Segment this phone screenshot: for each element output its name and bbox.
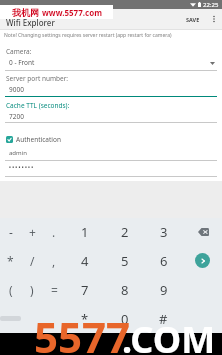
button[interactable]: 8 — [105, 275, 144, 304]
button[interactable]: 6 — [144, 246, 183, 275]
button[interactable]: 0 — [105, 304, 144, 333]
staticText: SAVE — [186, 16, 200, 23]
button[interactable]: * — [65, 304, 105, 333]
button[interactable]: 3 — [144, 218, 183, 246]
staticText: 9 — [160, 281, 168, 299]
staticText: * — [7, 253, 14, 269]
button[interactable]: Enter — [183, 246, 222, 275]
button[interactable]: 5 — [105, 246, 144, 275]
button[interactable]: 1 — [65, 218, 105, 246]
staticText: ( — [9, 282, 13, 298]
staticText: .COM — [122, 315, 216, 355]
button[interactable]: , — [43, 246, 65, 275]
staticText: 我机网 — [12, 7, 39, 18]
button[interactable]: 7 — [65, 275, 105, 304]
button[interactable] — [183, 304, 222, 333]
button[interactable]: ( — [0, 275, 21, 304]
button[interactable] — [43, 304, 65, 333]
button[interactable]: . — [43, 218, 65, 246]
staticText: 2 — [121, 223, 129, 241]
staticText: Cache TTL (seconds): — [6, 101, 70, 110]
button[interactable]: - — [0, 218, 21, 246]
staticText: Authentication — [16, 135, 61, 144]
button[interactable] — [0, 304, 21, 333]
staticText: * — [81, 310, 89, 328]
button[interactable]: Enter — [195, 253, 210, 268]
staticText: + — [29, 224, 36, 240]
button[interactable]: 4 — [65, 246, 105, 275]
staticText: . — [52, 224, 56, 240]
staticText: 22:25 — [203, 1, 219, 9]
staticText: 5577 — [34, 308, 131, 355]
staticText: ) — [30, 282, 34, 298]
button[interactable]: = — [43, 275, 65, 304]
staticText: 8 — [121, 281, 129, 299]
button[interactable]: * — [0, 246, 21, 275]
staticText: 1 — [81, 223, 89, 241]
staticText: Note! Changing settings requires server … — [4, 32, 172, 39]
button[interactable]: + — [21, 218, 43, 246]
staticText: 5 — [121, 252, 129, 270]
button[interactable]: 9 — [144, 275, 183, 304]
staticText: Wifi Explorer — [6, 17, 55, 28]
staticText: 6 — [160, 252, 168, 270]
button[interactable]: Backspace — [183, 218, 222, 246]
staticText: • • • • • • • • — [9, 164, 34, 171]
staticText: / — [30, 253, 35, 269]
staticText: , — [52, 253, 56, 269]
button[interactable]: More options — [206, 11, 222, 27]
staticText: # — [159, 310, 168, 328]
button[interactable] — [21, 304, 43, 333]
button[interactable]: 2 — [105, 218, 144, 246]
staticText: admin — [9, 149, 27, 157]
button[interactable]: Authentication — [6, 135, 61, 144]
staticText: www.5577.com — [42, 7, 102, 18]
staticText: Server port number: — [6, 74, 69, 83]
staticText: 0 - Front — [9, 58, 35, 67]
staticText: Camera: — [6, 47, 32, 56]
button[interactable]: Backspace — [196, 227, 210, 237]
button[interactable]: ) — [21, 275, 43, 304]
staticText: - — [9, 224, 13, 240]
staticText: 7200 — [9, 112, 24, 121]
staticText: 4 — [81, 252, 89, 270]
button[interactable] — [0, 9, 222, 29]
staticText: 7 — [81, 281, 89, 299]
button[interactable]: / — [21, 246, 43, 275]
button[interactable]: SAVE — [182, 11, 204, 27]
staticText: = — [51, 282, 58, 298]
button[interactable]: # — [144, 304, 183, 333]
staticText: 0 — [121, 310, 129, 328]
staticText: 3 — [160, 223, 168, 241]
staticText: 9000 — [9, 85, 24, 94]
